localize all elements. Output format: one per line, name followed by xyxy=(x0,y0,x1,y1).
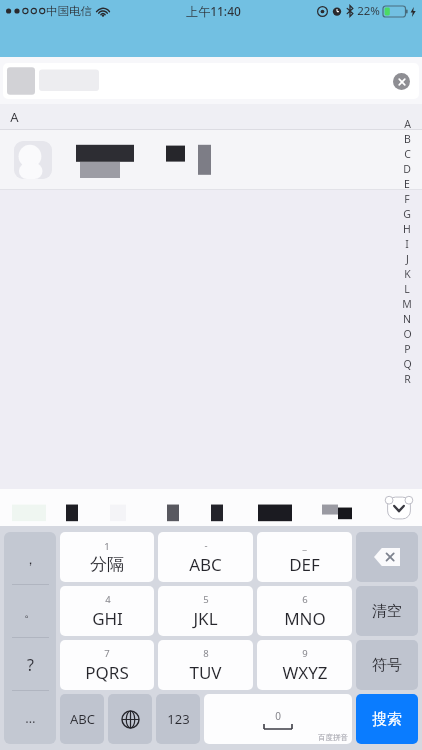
staticText: D xyxy=(403,162,411,176)
button[interactable]: ， xyxy=(4,532,56,585)
staticText: M xyxy=(402,297,412,311)
staticText: … xyxy=(25,709,36,727)
staticText: MNO xyxy=(284,607,326,630)
staticText: 6 xyxy=(302,593,308,606)
staticText: B xyxy=(404,132,411,146)
staticText: P xyxy=(404,342,411,356)
staticText: 清空 xyxy=(372,602,402,621)
button[interactable]: Hide keyboard xyxy=(384,495,414,521)
button[interactable]: 。 xyxy=(4,585,56,638)
staticText: 符号 xyxy=(372,656,402,675)
button[interactable]: Switch language xyxy=(108,694,152,744)
button[interactable] xyxy=(0,130,422,190)
staticText: 百度拼音 xyxy=(318,733,348,742)
button[interactable]: 搜索 xyxy=(356,694,418,744)
staticText: K xyxy=(404,267,411,281)
button[interactable]: Clear text xyxy=(0,57,422,104)
button[interactable]: 4 xyxy=(60,586,154,636)
staticText: ? xyxy=(27,654,34,676)
staticText: E xyxy=(404,177,410,191)
staticText: GHI xyxy=(92,607,123,630)
staticText: I xyxy=(405,237,409,251)
staticText: C xyxy=(404,147,411,161)
staticText: ABC xyxy=(189,553,222,576)
staticText: WXYZ xyxy=(282,661,328,684)
staticText: _ xyxy=(302,539,307,552)
staticText: A xyxy=(10,108,19,126)
staticText: R xyxy=(404,372,411,386)
button[interactable]: Alphabet index xyxy=(399,116,415,386)
staticText: - xyxy=(204,539,208,552)
button[interactable]: … xyxy=(4,691,56,744)
staticText: O xyxy=(403,327,412,341)
button[interactable]: 清空 xyxy=(356,586,418,636)
button[interactable]: 123 xyxy=(156,694,200,744)
button[interactable]: Backspace xyxy=(356,532,418,582)
staticText: ， xyxy=(24,551,37,567)
staticText: 22% xyxy=(357,3,380,19)
staticText: 4 xyxy=(105,593,111,606)
button[interactable]: 1 xyxy=(60,532,154,582)
staticText: 5 xyxy=(203,593,209,606)
staticText: Q xyxy=(403,357,412,371)
staticText: L xyxy=(404,282,410,296)
staticText: 上午11:40 xyxy=(186,3,241,19)
button[interactable]: 5 xyxy=(158,586,253,636)
button[interactable]: ? xyxy=(4,638,56,691)
staticText: PQRS xyxy=(85,661,129,684)
staticText: 。 xyxy=(24,604,37,620)
staticText: J xyxy=(406,252,409,266)
button[interactable]: 7 xyxy=(60,640,154,690)
button[interactable]: 符号 xyxy=(356,640,418,690)
button[interactable]: - xyxy=(158,532,253,582)
button[interactable]: 9 xyxy=(257,640,352,690)
button[interactable]: Clear text xyxy=(393,73,410,90)
staticText: G xyxy=(403,207,411,221)
staticText: 123 xyxy=(167,710,190,728)
staticText: JKL xyxy=(193,607,218,630)
button[interactable]: ABC xyxy=(60,694,104,744)
staticText: 7 xyxy=(104,647,110,660)
button[interactable]: 0 xyxy=(204,694,352,744)
staticText: F xyxy=(404,192,410,206)
staticText: 搜索 xyxy=(372,710,402,729)
staticText: 1 xyxy=(104,540,110,553)
button[interactable]: 6 xyxy=(257,586,352,636)
button[interactable]: _ xyxy=(257,532,352,582)
staticText: 9 xyxy=(302,647,308,660)
staticText: TUV xyxy=(189,661,222,684)
staticText: ABC xyxy=(70,710,95,728)
staticText: H xyxy=(403,222,411,236)
staticText: 中国电信 xyxy=(46,4,92,18)
staticText: 0 xyxy=(275,709,281,723)
staticText: N xyxy=(403,312,411,326)
staticText: 8 xyxy=(203,647,209,660)
staticText: DEF xyxy=(289,553,320,576)
button[interactable]: 8 xyxy=(158,640,253,690)
staticText: A xyxy=(404,117,411,131)
staticText: 分隔 xyxy=(90,554,124,575)
